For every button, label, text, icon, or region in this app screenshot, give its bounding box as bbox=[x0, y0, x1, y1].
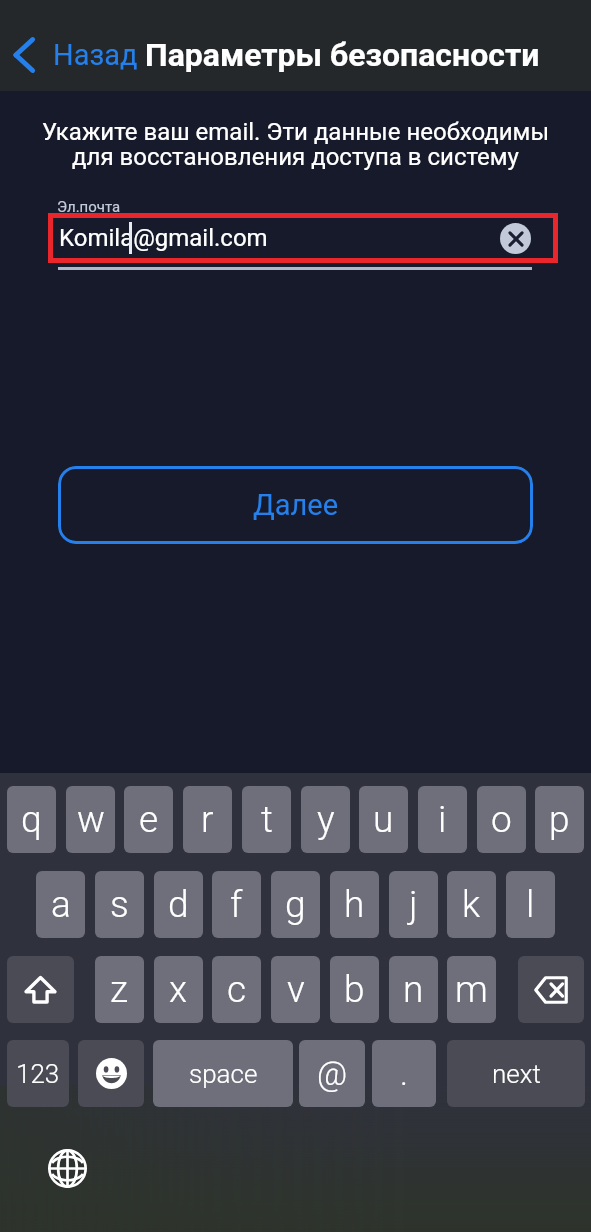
staticText: @ bbox=[317, 1054, 348, 1093]
staticText: Komila@gmail.com bbox=[59, 224, 268, 252]
button[interactable]: c bbox=[212, 956, 261, 1023]
staticText: k bbox=[462, 883, 481, 926]
staticText: m bbox=[455, 968, 488, 1011]
button[interactable]: Backspace bbox=[518, 956, 584, 1023]
staticText: Назад bbox=[53, 38, 138, 72]
button[interactable]: next bbox=[447, 1040, 585, 1107]
staticText: w bbox=[77, 798, 105, 841]
button[interactable]: s bbox=[95, 871, 144, 938]
button[interactable]: . bbox=[372, 1040, 436, 1107]
staticText: h bbox=[344, 883, 365, 926]
button[interactable]: Emoji bbox=[78, 1040, 144, 1107]
button[interactable]: g bbox=[271, 871, 320, 938]
staticText: q bbox=[21, 798, 42, 841]
staticText: next bbox=[492, 1059, 541, 1089]
staticText: f bbox=[230, 883, 243, 926]
staticText: e bbox=[139, 798, 159, 841]
staticText: space bbox=[189, 1059, 258, 1089]
staticText: g bbox=[285, 883, 306, 926]
button[interactable]: m bbox=[447, 956, 496, 1023]
staticText: v bbox=[287, 968, 305, 1011]
button[interactable]: j bbox=[389, 871, 438, 938]
staticText: y bbox=[317, 798, 335, 841]
button[interactable]: r bbox=[183, 786, 232, 853]
staticText: n bbox=[403, 968, 424, 1011]
staticText: o bbox=[491, 798, 512, 841]
button[interactable]: o bbox=[477, 786, 526, 853]
staticText: . bbox=[400, 1054, 408, 1093]
button[interactable]: u bbox=[359, 786, 408, 853]
button[interactable]: a bbox=[36, 871, 85, 938]
button[interactable]: l bbox=[506, 871, 555, 938]
button[interactable]: Назад bbox=[12, 37, 138, 73]
button[interactable]: Change keyboard language bbox=[47, 1148, 87, 1188]
staticText: Параметры безопасности bbox=[145, 36, 540, 74]
staticText: p bbox=[549, 798, 570, 841]
staticText: i bbox=[438, 798, 447, 841]
button[interactable]: y bbox=[301, 786, 350, 853]
button[interactable]: k bbox=[447, 871, 496, 938]
button[interactable]: z bbox=[95, 956, 144, 1023]
staticText: t bbox=[261, 798, 273, 841]
button[interactable]: Clear text bbox=[500, 223, 531, 254]
staticText: r bbox=[201, 798, 214, 841]
button[interactable]: v bbox=[271, 956, 320, 1023]
button[interactable]: b bbox=[330, 956, 379, 1023]
button[interactable]: Далее bbox=[58, 466, 533, 544]
staticText: s bbox=[110, 883, 129, 926]
staticText: c bbox=[227, 968, 247, 1011]
button[interactable]: p bbox=[535, 786, 584, 853]
button[interactable]: q bbox=[7, 786, 56, 853]
button[interactable]: w bbox=[66, 786, 115, 853]
button[interactable]: space bbox=[153, 1040, 293, 1107]
staticText: b bbox=[344, 968, 365, 1011]
button[interactable]: h bbox=[330, 871, 379, 938]
staticText: x bbox=[169, 968, 188, 1011]
button[interactable]: x bbox=[154, 956, 203, 1023]
button[interactable]: i bbox=[418, 786, 467, 853]
button[interactable]: d bbox=[154, 871, 203, 938]
staticText: u bbox=[373, 798, 394, 841]
button[interactable]: 123 bbox=[7, 1040, 69, 1107]
button[interactable]: f bbox=[212, 871, 261, 938]
button[interactable]: e bbox=[124, 786, 173, 853]
staticText: l bbox=[526, 883, 535, 926]
staticText: j bbox=[409, 883, 418, 926]
button[interactable]: Shift bbox=[7, 956, 74, 1023]
staticText: Далее bbox=[253, 488, 339, 522]
staticText: d bbox=[168, 883, 189, 926]
button[interactable]: n bbox=[389, 956, 438, 1023]
button[interactable]: t bbox=[242, 786, 291, 853]
staticText: Эл.почта bbox=[57, 198, 121, 216]
button[interactable]: @ bbox=[299, 1040, 365, 1107]
staticText: Укажите ваш email. Эти данные необходимы… bbox=[0, 118, 591, 171]
staticText: 123 bbox=[16, 1059, 60, 1089]
staticText: z bbox=[110, 968, 129, 1011]
staticText: a bbox=[51, 883, 71, 926]
